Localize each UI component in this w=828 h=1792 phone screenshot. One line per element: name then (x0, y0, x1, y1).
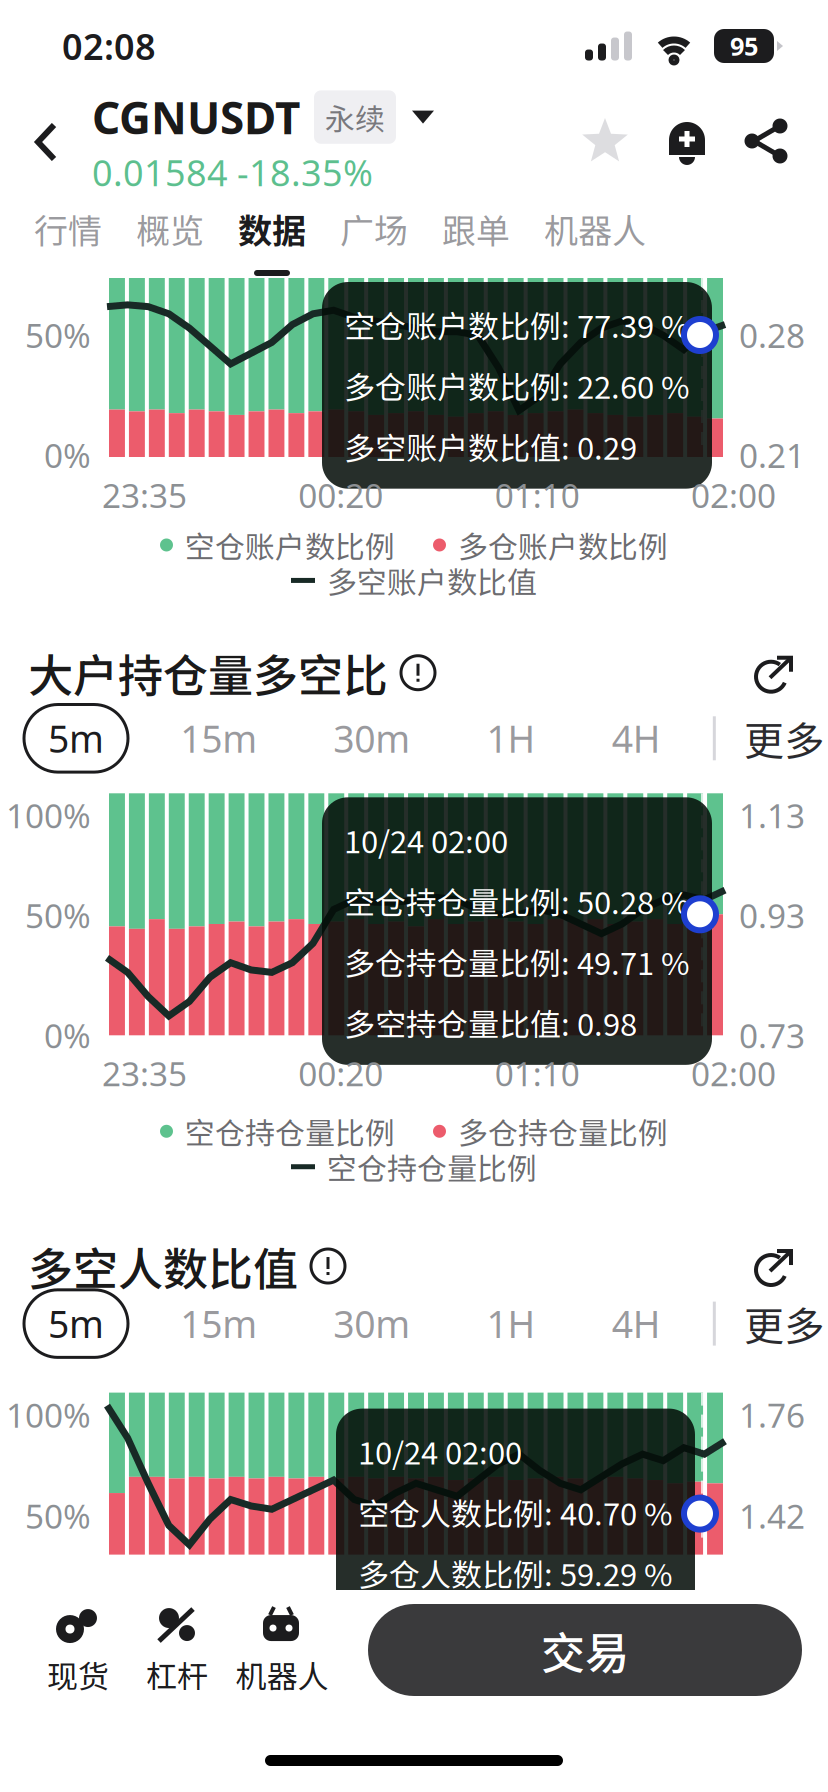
button[interactable]: 30m (309, 1290, 434, 1357)
staticText: 4H (612, 1299, 661, 1348)
button[interactable]: 5m (24, 1290, 128, 1357)
button[interactable]: 更多 (744, 709, 828, 767)
button[interactable]: 1H (462, 704, 559, 772)
button[interactable]: 行情 (17, 192, 119, 276)
staticText: 数据 (238, 204, 306, 253)
staticText: 多空账户数比值 (327, 559, 537, 602)
staticText: 多空持仓量比值: 0.98 (344, 1000, 637, 1045)
staticText: 5m (48, 713, 104, 763)
staticText: 02:00 (691, 473, 776, 517)
staticText: 100% (6, 793, 91, 838)
staticText: 空仓持仓量比例: 50.28 % (344, 878, 690, 923)
button[interactable]: 5m (24, 704, 128, 772)
staticText: 15m (180, 1299, 257, 1348)
button[interactable]: 1H (462, 1290, 559, 1357)
staticText: 4H (612, 713, 661, 763)
staticText: 0.28 (739, 313, 805, 357)
button[interactable]: 30m (309, 704, 434, 772)
button[interactable]: 机器人 (226, 1596, 338, 1704)
staticText: 多空人数比值 (28, 1233, 298, 1299)
button[interactable]: Price alert (630, 117, 710, 167)
staticText: 多仓持仓量比例 (458, 1110, 668, 1153)
button[interactable]: 更多 (744, 1295, 828, 1352)
button[interactable]: 15m (156, 1290, 281, 1357)
staticText: 空仓持仓量比例 (185, 1110, 395, 1153)
button[interactable]: 数据 (221, 192, 323, 276)
staticText: 广场 (340, 204, 408, 253)
staticText: 机器人 (235, 1652, 328, 1697)
staticText: 多空账户数比值: 0.29 (344, 424, 637, 469)
staticText: 15m (180, 713, 257, 763)
staticText: 50% (25, 893, 91, 938)
staticText: 01:10 (495, 473, 580, 517)
button[interactable]: 交易 (368, 1604, 802, 1696)
button[interactable]: 15m (156, 704, 281, 772)
staticText: 23:35 (102, 473, 187, 517)
staticText: 空仓持仓量比例 (327, 1145, 537, 1188)
button[interactable]: Add to favorites (580, 118, 630, 166)
staticText: 多仓账户数比例 (458, 523, 668, 567)
staticText: 02:00 (691, 1051, 776, 1096)
staticText: 30m (333, 713, 410, 763)
staticText: 更多 (744, 709, 824, 767)
button[interactable]: Back (0, 92, 92, 192)
staticText: 机器人 (544, 204, 646, 253)
button[interactable]: 4H (588, 1290, 685, 1357)
staticText: 0.01584 -18.35% (92, 148, 373, 196)
staticText: 0.73 (739, 1013, 805, 1058)
staticText: 10/24 02:00 (344, 817, 508, 862)
staticText: 95 (730, 29, 758, 63)
staticText: 交易 (541, 1618, 629, 1682)
button[interactable]: 杠杆 (128, 1596, 226, 1704)
staticText: 100% (6, 1393, 91, 1437)
staticText: 0% (44, 1013, 91, 1058)
staticText: 永续 (325, 95, 385, 139)
staticText: 概览 (136, 204, 204, 253)
staticText: 1.76 (739, 1393, 805, 1437)
staticText: 1.42 (739, 1494, 805, 1538)
staticText: 1H (486, 713, 535, 763)
button[interactable]: Open in full screen (752, 652, 794, 694)
staticText: 更多 (744, 1295, 824, 1352)
staticText: 10/24 02:00 (358, 1429, 522, 1473)
staticText: 1.13 (739, 793, 805, 838)
staticText: 大户持仓量多空比 (28, 640, 388, 705)
button[interactable]: 机器人 (527, 192, 663, 276)
staticText: CGNUSDT (92, 88, 300, 146)
staticText: 5m (48, 1299, 104, 1348)
button[interactable]: 概览 (119, 192, 221, 276)
button[interactable]: Open in full screen (752, 1245, 794, 1287)
staticText: 00:20 (298, 1051, 383, 1096)
staticText: 02:08 (62, 22, 156, 70)
staticText: 0.93 (739, 893, 805, 938)
staticText: 杠杆 (146, 1652, 208, 1697)
button[interactable]: 现货 (28, 1596, 128, 1704)
staticText: 现货 (47, 1652, 109, 1697)
button[interactable]: 4H (588, 704, 685, 772)
staticText: 1H (486, 1299, 535, 1348)
button[interactable]: Share (710, 118, 790, 166)
staticText: 多仓持仓量比例: 49.71 % (344, 939, 690, 984)
staticText: 行情 (34, 204, 102, 253)
button[interactable]: 广场 (323, 192, 425, 276)
staticText: 空仓人数比例: 40.70 % (358, 1489, 673, 1534)
staticText: 多仓人数比例: 59.29 % (358, 1550, 673, 1595)
staticText: 50% (25, 313, 91, 357)
staticText: 0.21 (739, 433, 805, 477)
staticText: 50% (25, 1494, 91, 1538)
staticText: 23:35 (102, 1051, 187, 1096)
staticText: 空仓账户数比例 (185, 523, 395, 567)
staticText: 30m (333, 1299, 410, 1348)
staticText: 空仓账户数比例: 77.39 % (344, 302, 690, 347)
staticText: 00:20 (298, 473, 383, 517)
staticText: 0% (44, 433, 91, 477)
staticText: 01:10 (495, 1051, 580, 1096)
staticText: 跟单 (442, 204, 510, 253)
staticText: 多仓账户数比例: 22.60 % (344, 363, 690, 408)
button[interactable]: 跟单 (425, 192, 527, 276)
